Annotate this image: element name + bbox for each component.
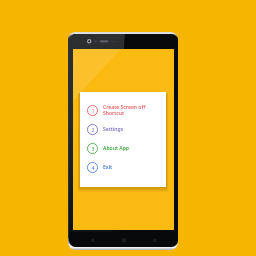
staticText: 1 [91,107,95,114]
button[interactable]: 1 [80,101,166,120]
staticText: 2 [91,126,95,133]
button[interactable]: 4 [80,158,166,177]
button[interactable]: 3 [80,139,166,158]
button[interactable]: 2 [80,120,166,139]
staticText: 4 [91,164,95,171]
staticText: 3 [91,145,95,152]
staticText: Exit [103,164,113,171]
staticText: Settings [103,126,124,133]
staticText: About App [103,145,129,152]
staticText: Create Screen off Shortcut [103,104,146,117]
